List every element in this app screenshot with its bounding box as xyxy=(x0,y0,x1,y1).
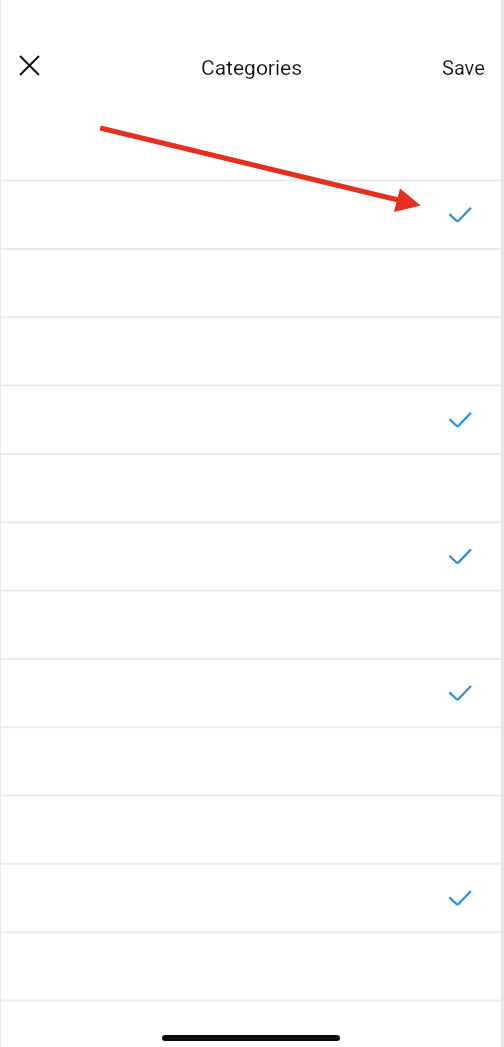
staticText: Save xyxy=(442,56,485,79)
button[interactable]: Category 4 xyxy=(0,317,504,385)
button[interactable]: Category 6 xyxy=(0,454,504,522)
staticText: Categories xyxy=(201,56,303,81)
button[interactable]: Category 7, selected xyxy=(0,522,504,590)
button[interactable]: Category 5, selected xyxy=(0,386,504,454)
button[interactable]: Close xyxy=(10,46,48,84)
button[interactable]: Category 11 xyxy=(0,796,504,864)
button[interactable]: Category 3 xyxy=(0,249,504,317)
button[interactable]: Save xyxy=(434,48,493,87)
button[interactable]: Category 1 xyxy=(0,112,504,180)
button[interactable]: Category 10 xyxy=(0,727,504,795)
button[interactable]: Category 13 xyxy=(0,932,504,1000)
button[interactable]: Category 12, selected xyxy=(0,864,504,932)
button[interactable]: Category 9, selected xyxy=(0,659,504,727)
button[interactable]: Category 8 xyxy=(0,591,504,659)
button[interactable]: Category 2, selected xyxy=(0,181,504,249)
